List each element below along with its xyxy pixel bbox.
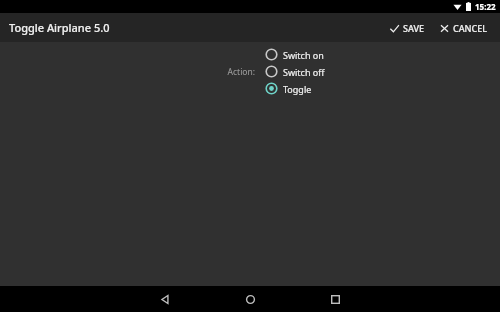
staticText: SAVE bbox=[403, 22, 425, 34]
button[interactable]: Back bbox=[123, 286, 208, 312]
button[interactable]: SAVE bbox=[385, 18, 429, 38]
staticText: CANCEL bbox=[453, 22, 488, 34]
button[interactable]: CANCEL bbox=[435, 18, 492, 38]
button[interactable]: Switch off bbox=[263, 63, 327, 80]
staticText: 15:22 bbox=[475, 1, 496, 12]
button[interactable]: Home bbox=[208, 286, 293, 312]
button[interactable]: Switch on bbox=[263, 46, 326, 63]
staticText: Action: bbox=[227, 66, 255, 78]
button[interactable]: Recent apps bbox=[293, 286, 378, 312]
staticText: Toggle bbox=[283, 83, 312, 95]
button[interactable]: Toggle bbox=[263, 80, 314, 97]
staticText: Switch off bbox=[283, 66, 325, 78]
staticText: Switch on bbox=[283, 49, 324, 61]
staticText: Toggle Airplane 5.0 bbox=[9, 20, 110, 35]
